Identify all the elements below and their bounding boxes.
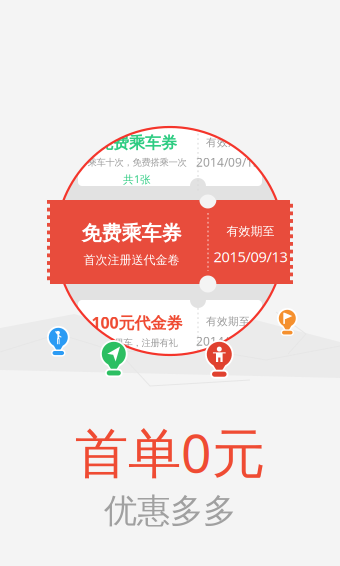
staticText: 100元代金券 [91,312,182,333]
staticText: 2014/09/13 [196,154,260,170]
staticText: 首次注册送代金卷 [83,253,179,267]
staticText: 免费乘车券 [97,133,177,153]
staticText: 免费乘车券 [81,221,181,246]
staticText: 2015/09/13 [213,247,287,266]
staticText: 2014/09/13 [196,333,260,349]
staticText: 乘车十次，免费搭乘一次 [87,157,186,168]
staticText: 优惠多多 [104,490,236,531]
staticText: 天天甩车，注册有礼 [96,337,177,349]
staticText: 首单0元 [75,417,265,487]
staticText: 共3张 [123,353,151,367]
staticText: 有效期至 [206,136,250,149]
staticText: 有效期至 [206,315,250,328]
staticText: 共1张 [123,172,151,186]
staticText: 有效期至 [226,224,274,239]
